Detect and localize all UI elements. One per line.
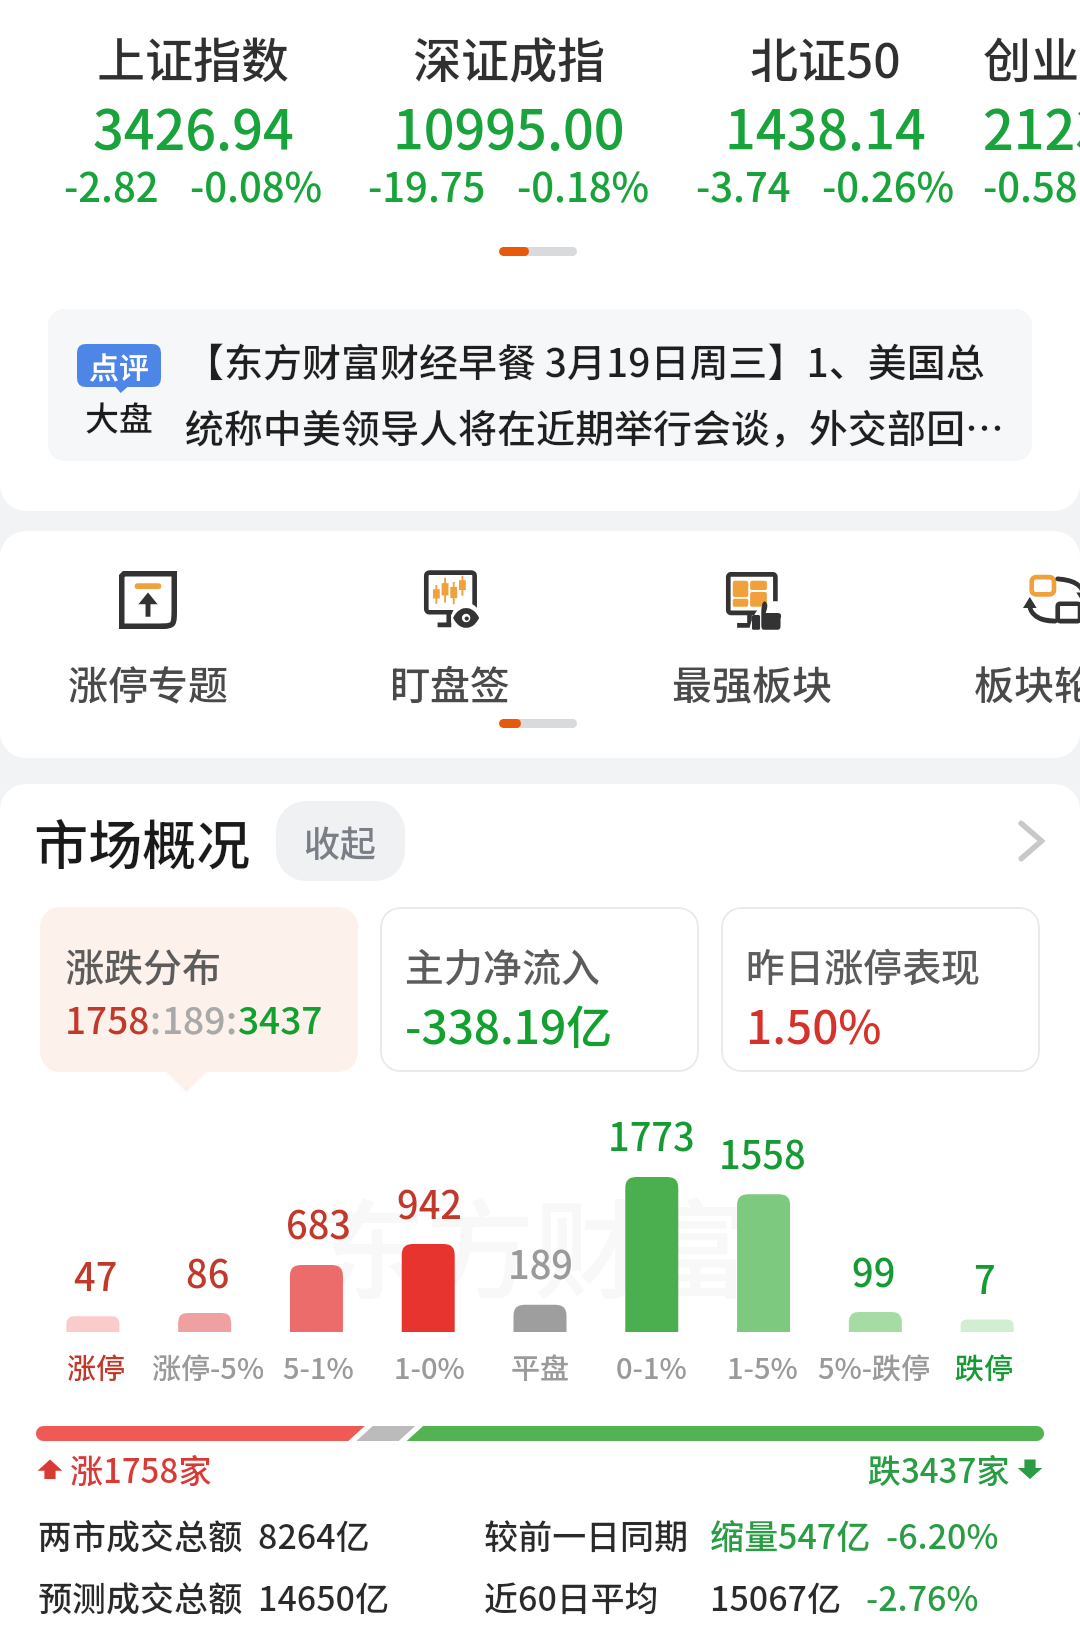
staticText: 1-0% [394,1345,465,1387]
staticText: 涨停 [67,1345,126,1387]
staticText: 5%-跌停 [818,1345,929,1387]
staticText: 涨跌分布 [65,937,222,993]
staticText: 东方财富 [318,1165,751,1321]
button[interactable]: 盯盘签 [299,569,601,712]
staticText: 1558 [719,1125,806,1180]
staticText: 15067亿 [710,1572,841,1621]
staticText: 189 [162,991,226,1045]
staticText: 主力净流入 [405,937,601,993]
staticText: 较前一日同期 [484,1510,688,1559]
staticText: 预测成交总额 [38,1572,242,1621]
button[interactable]: 市场概况 [34,801,1046,881]
staticText: -19.75 [368,156,486,214]
staticText: 近60日平均 [484,1572,659,1621]
staticText: 10995.00 [393,87,625,165]
staticText: 大盘 [85,392,153,441]
button[interactable]: 北证50 [667,22,983,228]
staticText: 8264亿 [258,1510,370,1559]
staticText: 涨1758家 [70,1445,212,1493]
staticText: -6.20% [886,1510,999,1559]
staticText: 点评 [89,344,149,387]
staticText: 昨日涨停表现 [746,937,981,993]
staticText: 市场概况 [34,802,250,880]
staticText: 99 [852,1243,896,1298]
staticText: 1438.14 [725,87,926,165]
staticText: 189 [508,1235,573,1290]
staticText: 683 [286,1195,351,1250]
staticText: 14650亿 [258,1572,389,1621]
staticText: 最强板块 [672,654,832,712]
staticText: -2.76% [866,1572,979,1621]
staticText: -3.74 [696,156,791,214]
staticText: 86 [186,1244,230,1299]
staticText: 深证成指 [413,22,606,92]
staticText: -0.08% [190,156,323,214]
staticText: 北证50 [750,22,901,92]
staticText: 1773 [608,1107,695,1162]
staticText: 1.50% [746,991,882,1058]
staticText: -0.26% [822,156,955,214]
button[interactable]: 涨停专题 [0,569,299,712]
staticText: 盯盘签 [390,654,510,712]
staticText: 缩量547亿 [710,1510,871,1559]
staticText: 0-1% [616,1345,687,1387]
button[interactable]: More [1006,817,1054,865]
staticText: 1-5% [727,1345,798,1387]
staticText: 2123.93 [983,87,1080,165]
button[interactable]: 昨日涨停表现 [721,907,1040,1072]
staticText: 7 [974,1250,996,1305]
staticText: 涨停-5% [152,1345,263,1387]
button[interactable]: 最强板块 [601,569,903,712]
button[interactable]: 上证指数 [35,22,351,228]
staticText: 统称中美领导人将在近期举行会谈，外交部回… [185,398,1005,454]
button[interactable]: 收起 [276,801,405,881]
staticText: 创业板指 [983,22,1080,92]
staticText: -0.58 [983,156,1078,214]
staticText: : [226,991,238,1045]
staticText: 跌3437家 [868,1445,1010,1493]
staticText: 收起 [304,815,377,867]
staticText: 3426.94 [93,87,294,165]
button[interactable]: 板块轮动 [903,569,1080,712]
button[interactable]: 深证成指 [351,22,667,228]
staticText: 942 [397,1175,462,1230]
staticText: 平盘 [511,1345,570,1387]
button[interactable]: 创业板指 [983,22,1080,228]
staticText: 1758 [65,991,150,1045]
staticText: 5-1% [283,1345,354,1387]
staticText: 【东方财富财经早餐 3月19日周三】1、美国总 [185,332,985,388]
staticText: 跌停 [955,1345,1014,1387]
staticText: 47 [74,1247,118,1302]
staticText: 上证指数 [97,22,290,92]
staticText: 两市成交总额 [38,1510,242,1559]
staticText: -0.18% [517,156,650,214]
button[interactable]: 点评 [48,309,1032,461]
button[interactable]: 主力净流入 [380,907,699,1072]
staticText: -338.19亿 [405,991,613,1058]
staticText: -2.82 [64,156,159,214]
staticText: 3437 [238,991,323,1045]
staticText: 板块轮动 [974,654,1080,712]
button[interactable]: 涨跌分布 [40,907,358,1072]
staticText: : [150,991,162,1045]
staticText: 涨停专题 [68,654,228,712]
